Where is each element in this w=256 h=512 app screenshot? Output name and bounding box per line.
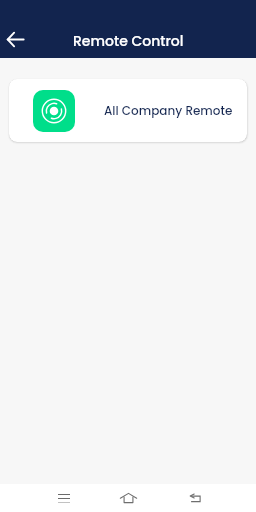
button[interactable]: Back <box>1 25 29 53</box>
button[interactable]: Home <box>108 484 148 512</box>
staticText: Remote Control <box>73 31 184 51</box>
staticText: All Company Remote <box>104 102 233 119</box>
button[interactable]: Recent apps <box>44 484 84 512</box>
button[interactable]: All Company Remote <box>9 79 247 142</box>
button[interactable]: Back <box>175 484 215 512</box>
